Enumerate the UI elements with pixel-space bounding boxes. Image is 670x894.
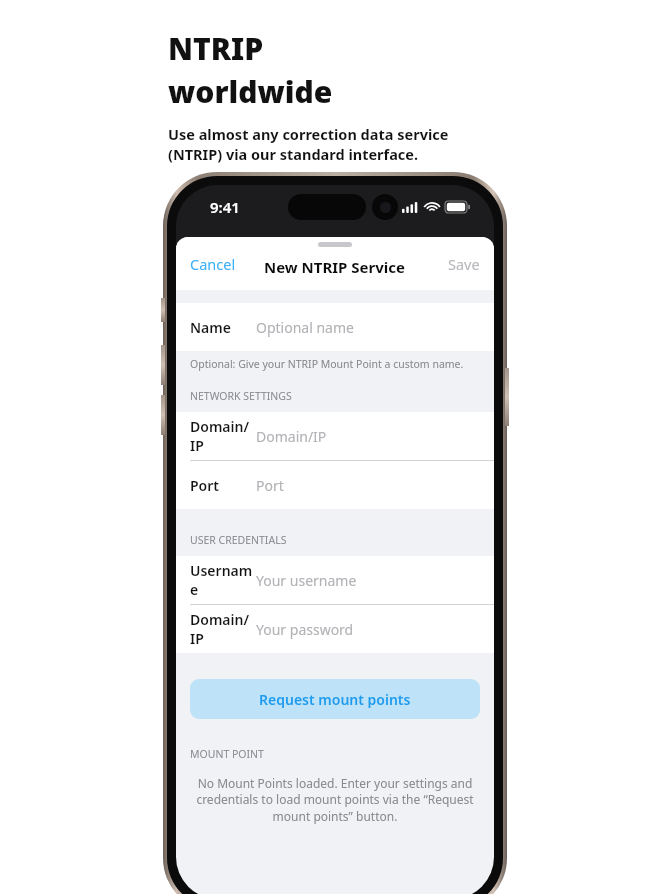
staticText: New NTRIP Service [264,257,406,277]
staticText: Use almost any correction data service [168,124,449,144]
staticText: Your password [256,620,354,639]
staticText: Optional: Give your NTRIP Mount Point a … [190,357,464,371]
staticText: Save [448,254,480,274]
staticText: NTRIP [168,28,264,69]
staticText: Domain/IP [190,610,256,648]
button[interactable]: Domain/IP [176,412,494,460]
button[interactable]: Cancel [178,248,248,280]
staticText: worldwide [168,71,333,112]
staticText: USER CREDENTIALS [190,533,287,547]
button[interactable]: Username [176,556,494,604]
staticText: NETWORK SETTINGS [190,389,292,403]
button[interactable]: Port [176,461,494,509]
staticText: Cancel [190,254,236,274]
staticText: Port [256,476,284,495]
staticText: Your username [256,571,357,590]
button[interactable]: Domain/IP [176,605,494,653]
staticText: Domain/IP [256,427,327,446]
button[interactable]: Name [176,303,494,351]
staticText: 9:41 [210,197,240,217]
staticText: Optional name [256,318,354,337]
staticText: Domain/IP [190,417,256,455]
button[interactable]: Request mount points [190,679,480,719]
staticText: (NTRIP) via our standard interface. [168,144,419,164]
staticText: Port [190,476,220,495]
staticText: Request mount points [259,690,411,709]
staticText: Username [190,561,256,599]
staticText: Name [190,318,231,337]
staticText: No Mount Points loaded. Enter your setti… [190,775,480,825]
button[interactable]: Save [436,248,492,280]
staticText: MOUNT POINT [190,747,264,761]
